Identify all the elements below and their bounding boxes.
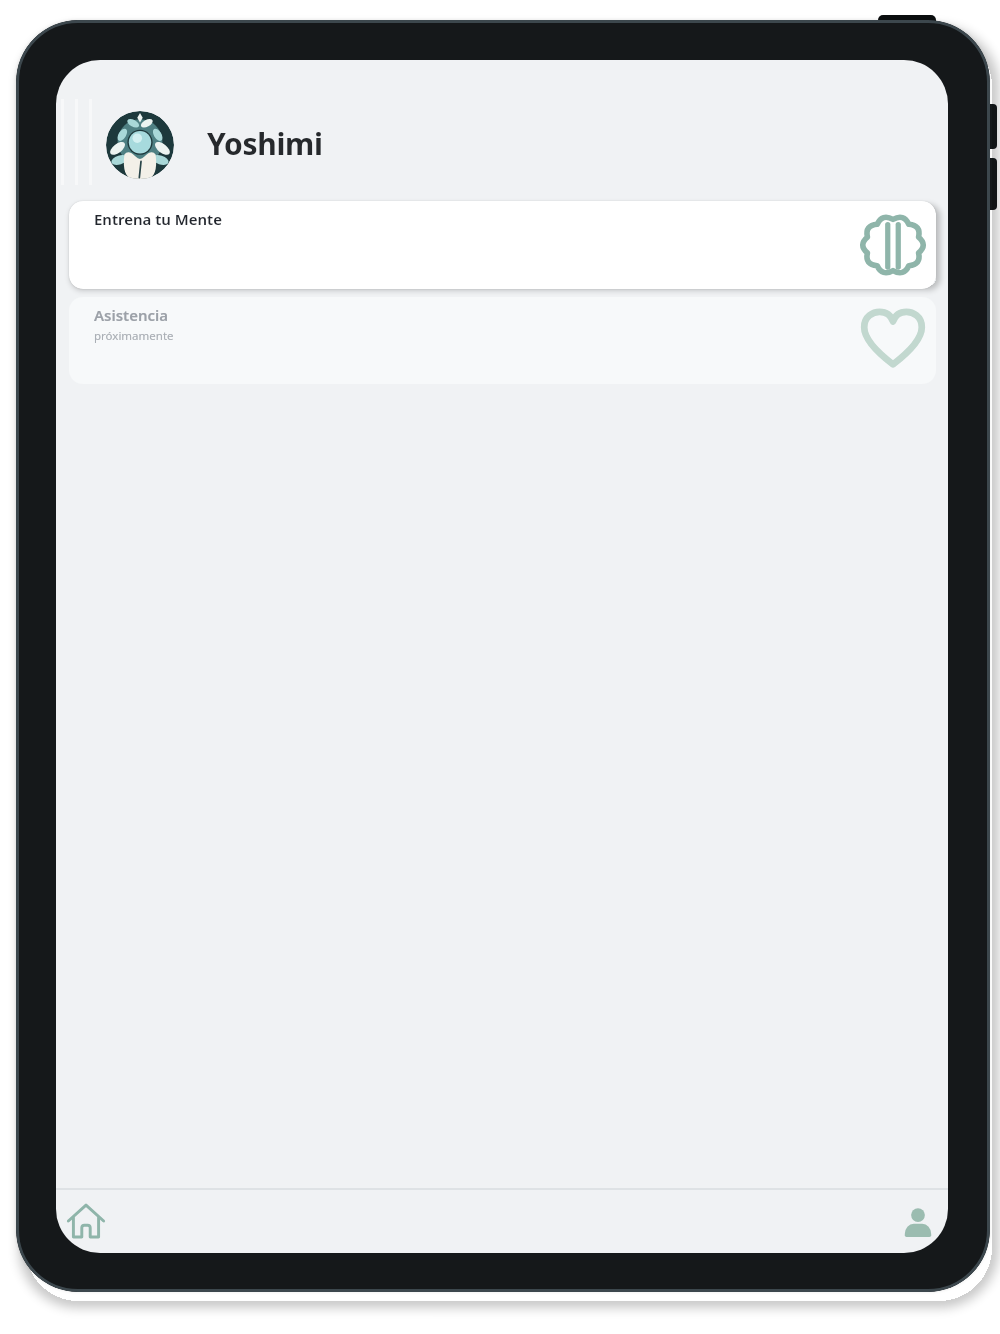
staticText: Yoshimi xyxy=(207,123,323,164)
staticText: Asistencia xyxy=(94,305,169,325)
staticText: Entrena tu Mente xyxy=(94,209,222,229)
button[interactable] xyxy=(106,111,174,179)
staticText: próximamente xyxy=(94,328,174,344)
button[interactable]: Entrena tu Mente xyxy=(69,201,936,289)
button[interactable]: Asistencia xyxy=(69,297,936,384)
button[interactable] xyxy=(61,1196,111,1246)
button[interactable] xyxy=(896,1200,940,1244)
